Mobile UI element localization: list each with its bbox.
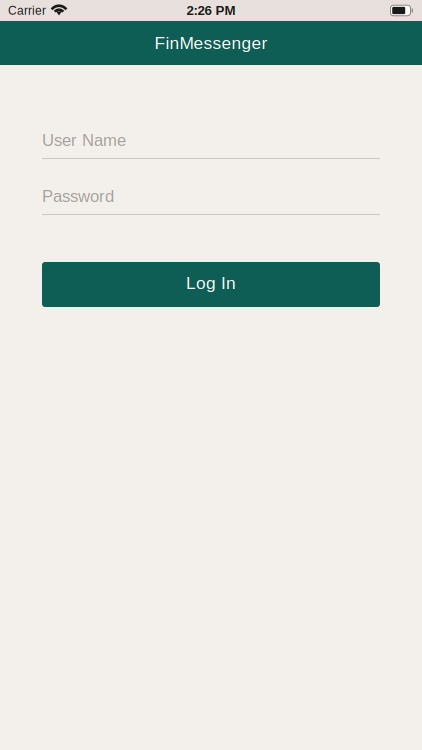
staticText: FinMessenger (154, 33, 267, 53)
staticText: User Name (42, 131, 126, 150)
button[interactable]: Log In (42, 262, 380, 307)
staticText: Carrier (8, 4, 46, 17)
button[interactable]: Password (42, 181, 380, 215)
staticText: 2:26 PM (186, 3, 235, 18)
staticText: Password (42, 187, 114, 206)
button[interactable]: User Name (42, 125, 380, 159)
staticText: Log In (186, 273, 236, 293)
